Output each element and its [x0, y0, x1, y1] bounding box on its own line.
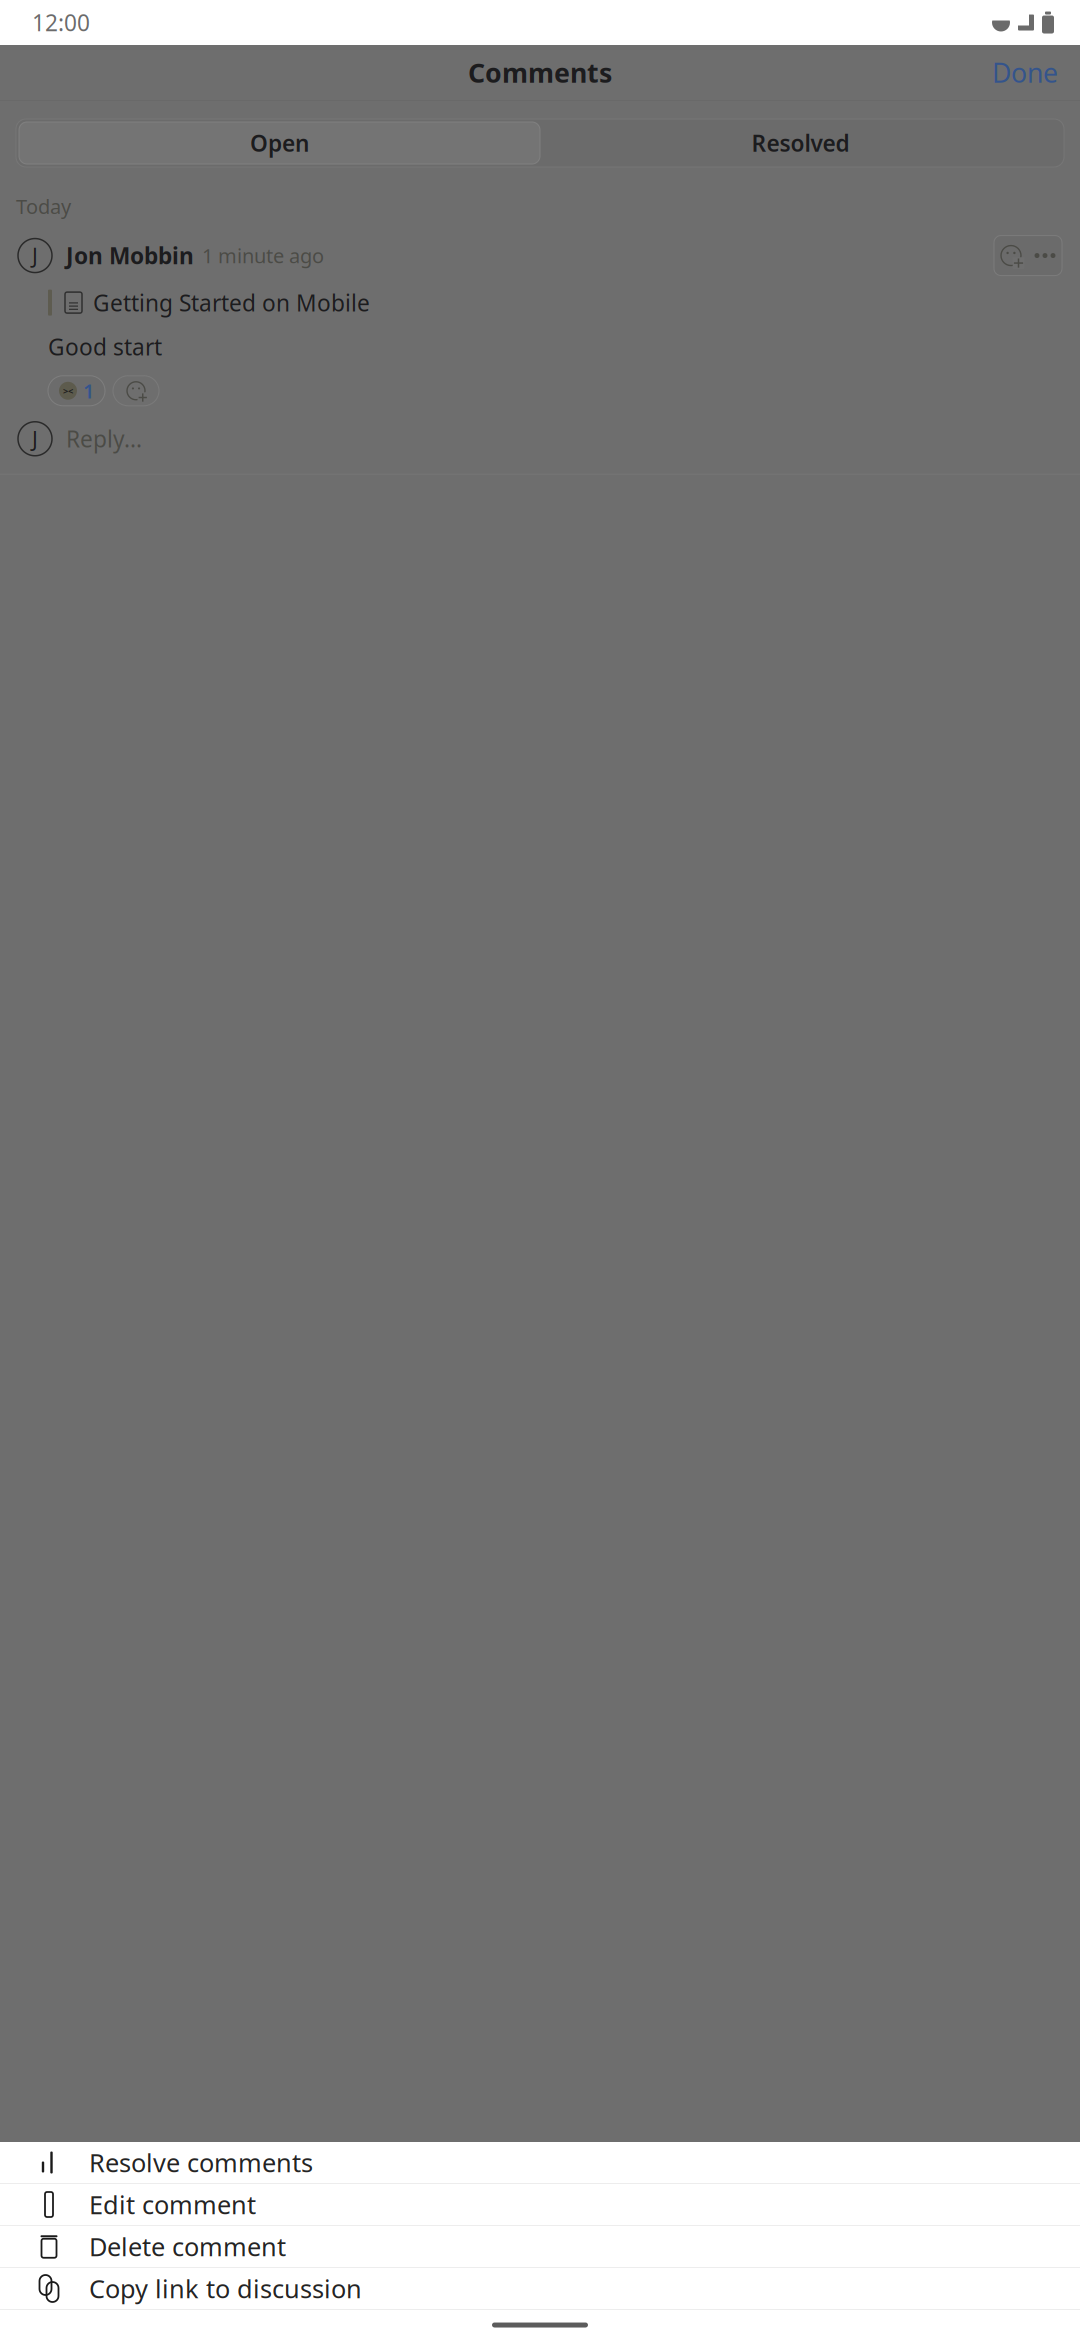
- staticText: Comments: [468, 55, 612, 90]
- staticText: 12:00: [32, 7, 90, 37]
- staticText: Delete comment: [89, 2230, 286, 2263]
- button[interactable]: J: [0, 422, 1080, 474]
- button[interactable]: Copy link to discussion: [0, 2268, 1080, 2309]
- button[interactable]: Resolved: [540, 122, 1061, 164]
- staticText: Jon Mobbin: [66, 240, 194, 271]
- button[interactable]: Delete comment: [0, 2226, 1080, 2267]
- button[interactable]: Open: [19, 122, 540, 164]
- staticText: Resolved: [751, 128, 849, 158]
- button[interactable]: Edit comment: [0, 2184, 1080, 2225]
- button[interactable]: Resolve comments: [0, 2142, 1080, 2183]
- staticText: J: [32, 241, 38, 270]
- staticText: J: [32, 425, 38, 453]
- button[interactable]: More options: [1028, 236, 1062, 276]
- staticText: Good start: [48, 332, 162, 362]
- button[interactable]: Add reaction: [994, 236, 1028, 276]
- staticText: Edit comment: [89, 2188, 256, 2221]
- button[interactable]: Add reaction: [113, 376, 159, 406]
- staticText: Reply...: [66, 424, 142, 454]
- staticText: 1 minute ago: [202, 242, 324, 269]
- staticText: Today: [16, 193, 71, 220]
- staticText: Getting Started on Mobile: [93, 288, 370, 318]
- staticText: Open: [250, 128, 309, 158]
- staticText: Done: [992, 55, 1058, 90]
- staticText: Copy link to discussion: [89, 2272, 362, 2305]
- staticText: ><: [63, 385, 73, 397]
- button[interactable]: Done: [976, 43, 1074, 102]
- staticText: 1: [83, 377, 94, 404]
- button[interactable]: ><: [48, 376, 105, 406]
- staticText: Resolve comments: [89, 2146, 313, 2179]
